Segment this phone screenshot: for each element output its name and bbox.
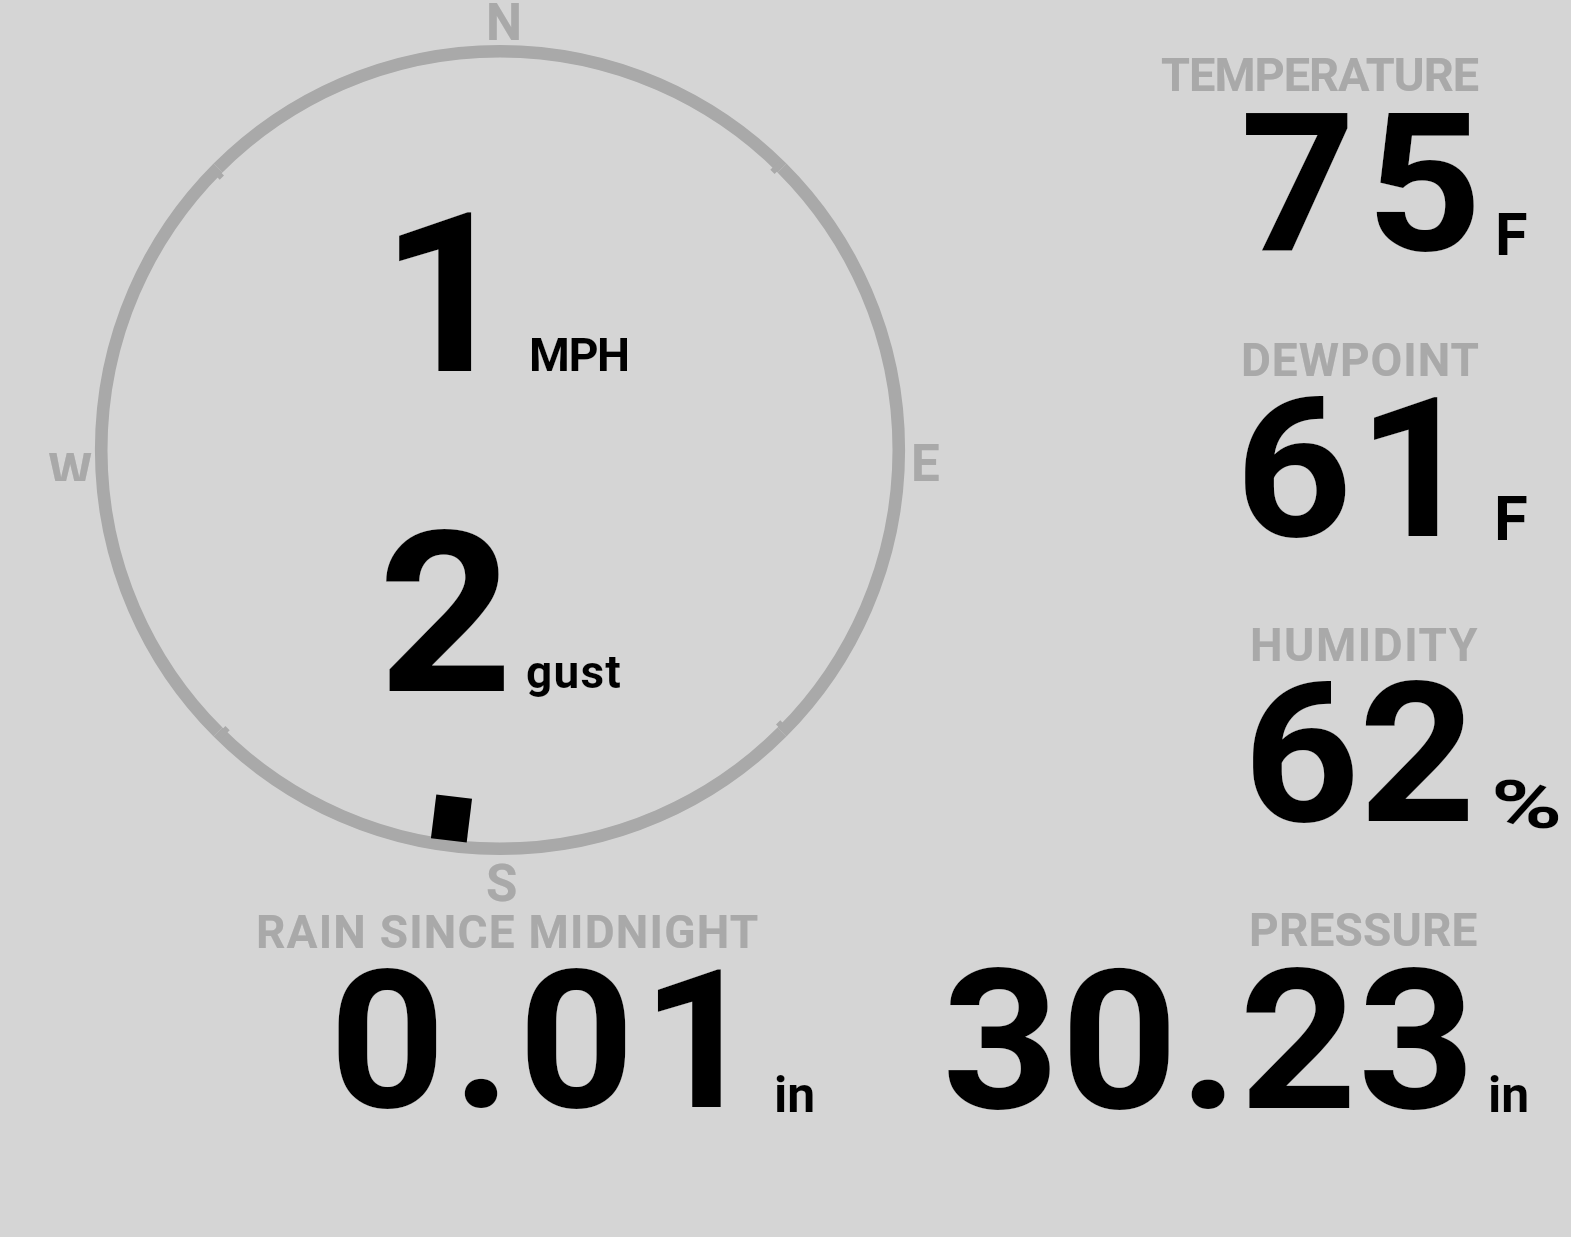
- staticText: E: [911, 434, 940, 494]
- staticText: 61: [1235, 355, 1480, 583]
- staticText: F: [1495, 200, 1528, 270]
- staticText: W: [48, 453, 93, 481]
- staticText: gust: [526, 645, 623, 699]
- staticText: F: [1494, 483, 1528, 555]
- staticText: TEMPERATURE: [1161, 47, 1479, 102]
- staticText: PRESSURE: [1249, 903, 1478, 957]
- staticText: 1: [380, 165, 514, 425]
- staticText: DEWPOINT: [1241, 333, 1480, 387]
- staticText: HUMIDITY: [1250, 618, 1479, 672]
- staticText: 75: [1240, 72, 1493, 297]
- button[interactable]: Humidity 62 percent: [1150, 605, 1560, 835]
- button[interactable]: Wind 1 MPH, gusting 2, from the south: [95, 45, 905, 855]
- staticText: 30.23: [942, 927, 1476, 1156]
- staticText: MPH: [529, 328, 629, 383]
- staticText: 2: [378, 483, 513, 746]
- staticText: 0.01: [329, 927, 765, 1154]
- button[interactable]: Pressure 30.23 in: [930, 895, 1550, 1120]
- button[interactable]: Dewpoint 61 F: [1150, 320, 1560, 550]
- staticText: 62: [1243, 641, 1475, 869]
- staticText: %: [1491, 766, 1563, 844]
- staticText: RAIN SINCE MIDNIGHT: [256, 905, 760, 959]
- staticText: in: [774, 1066, 816, 1125]
- button[interactable]: Rain since midnight 0.01 in: [250, 900, 830, 1120]
- staticText: N: [486, 0, 523, 53]
- button[interactable]: Temperature 75 F: [1150, 45, 1560, 270]
- staticText: in: [1488, 1066, 1530, 1125]
- staticText: S: [486, 854, 518, 914]
